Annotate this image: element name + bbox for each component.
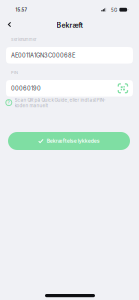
staticText: AE0011A1GN3C00068E [11, 52, 75, 59]
staticText: 5G [111, 7, 117, 13]
staticText: Bekræftelse lykkedes [47, 138, 100, 144]
button[interactable]: Scan QR code [118, 83, 128, 93]
button[interactable]: AE0011A1GN3C00068E [6, 47, 133, 64]
staticText: PIN [11, 70, 18, 75]
button[interactable]: Back [3, 18, 16, 31]
button[interactable]: Bekræftelse lykkedes [8, 132, 130, 150]
staticText: ? [7, 99, 10, 105]
staticText: 00060190 [11, 85, 41, 92]
staticText: 15.57 [15, 7, 26, 12]
staticText: Bekræft [56, 21, 82, 29]
staticText: Serienummer [11, 37, 37, 42]
staticText: Scan QR på Quick Guide, eller indtast PI… [15, 97, 106, 108]
button[interactable]: Help [6, 99, 12, 106]
